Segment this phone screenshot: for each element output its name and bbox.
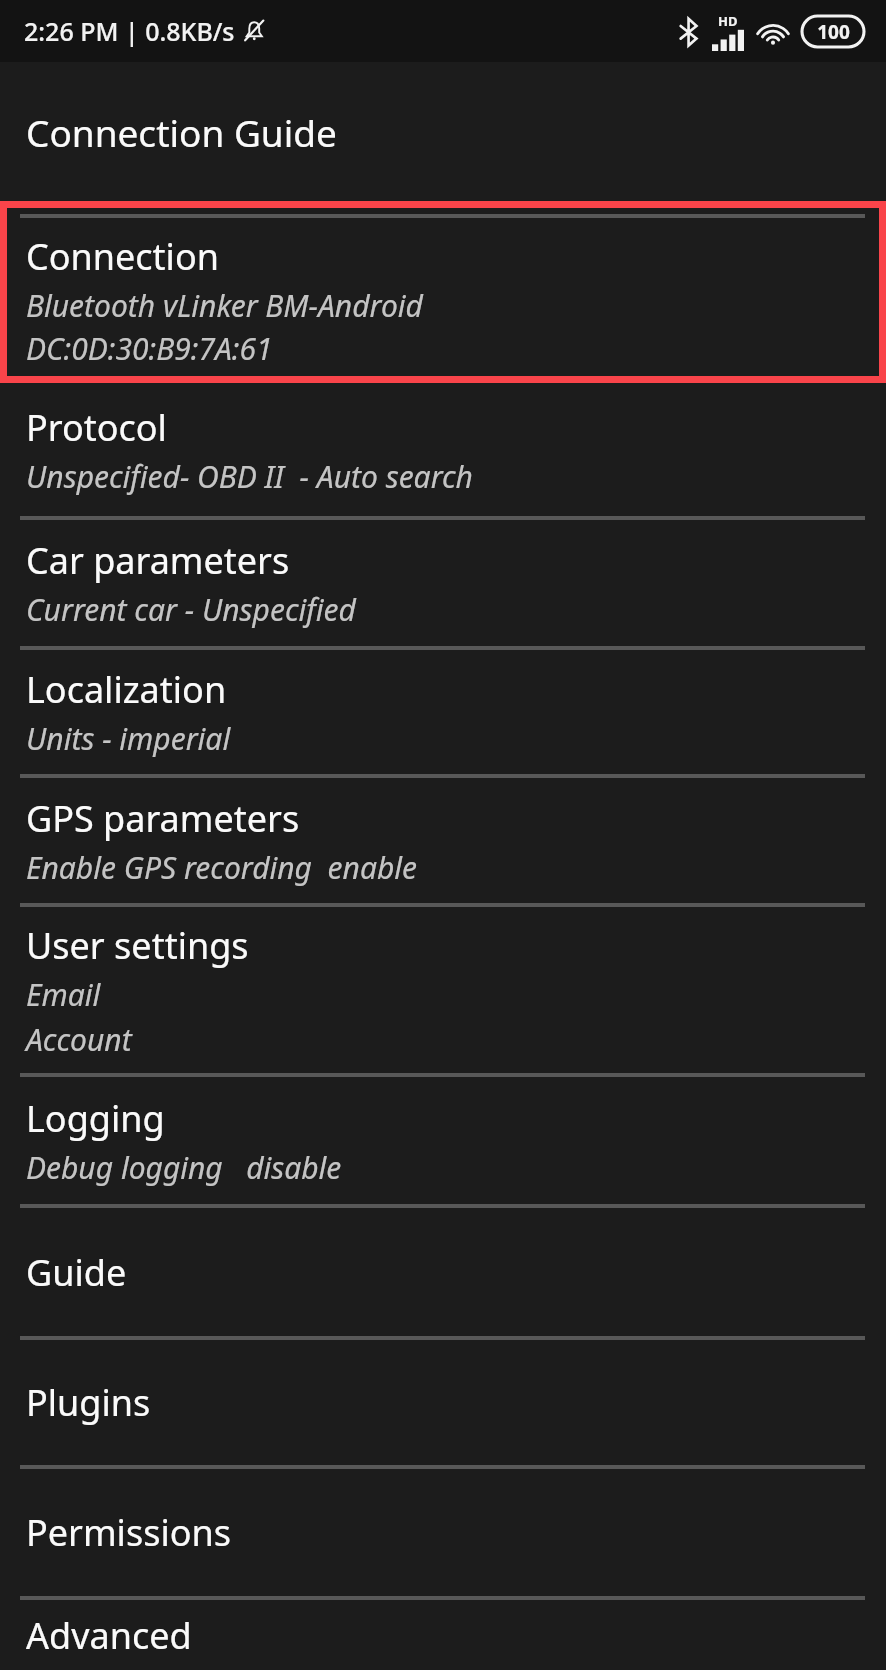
staticText: Plugins [26,1378,151,1427]
staticText: Localization [26,665,227,714]
button[interactable]: Protocol [0,383,886,516]
staticText: Debug logging disable [26,1147,342,1188]
staticText: Unspecified- OBD II - Auto search [26,456,473,497]
button[interactable]: Advanced [0,1600,886,1670]
button[interactable]: Guide [0,1208,886,1336]
staticText: Advanced [26,1611,192,1660]
button[interactable]: User settings [0,907,886,1073]
button[interactable]: Plugins [0,1340,886,1465]
staticText: Permissions [26,1508,231,1557]
staticText: GPS parameters [26,794,300,843]
button[interactable]: GPS parameters [0,778,886,903]
button[interactable]: Logging [0,1077,886,1204]
staticText: Logging [26,1094,165,1143]
button[interactable]: Localization [0,650,886,774]
staticText: 2:26 PM | 0.8KB/s [24,14,235,48]
staticText: HD [718,12,738,30]
staticText: Bluetooth vLinker BM-Android [26,285,423,326]
staticText: Protocol [26,403,167,452]
staticText: Connection Guide [26,107,337,157]
staticText: Connection [26,232,219,281]
staticText: Guide [26,1248,127,1297]
staticText: User settings [26,921,249,970]
staticText: Email [26,974,101,1015]
staticText: Car parameters [26,536,290,585]
button[interactable]: Car parameters [0,520,886,646]
staticText: Enable GPS recording enable [26,847,418,888]
button[interactable]: Connection [0,201,886,383]
staticText: DC:0D:30:B9:7A:61 [26,328,273,369]
staticText: Account [26,1019,132,1060]
staticText: Current car - Unspecified [26,589,356,630]
staticText: 100 [817,19,850,45]
staticText: Units - imperial [26,718,231,759]
button[interactable]: Permissions [0,1469,886,1596]
